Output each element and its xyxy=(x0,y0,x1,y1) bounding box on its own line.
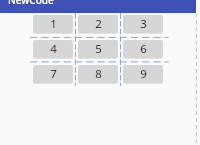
staticText: 8 xyxy=(95,66,102,82)
staticText: NewCode xyxy=(8,0,54,6)
staticText: 7 xyxy=(50,66,57,82)
staticText: 3 xyxy=(140,16,147,32)
staticText: 2 xyxy=(95,16,102,32)
staticText: 6 xyxy=(140,41,147,57)
button[interactable]: Key 9 xyxy=(123,65,163,83)
button[interactable]: Key 1 xyxy=(33,15,73,33)
staticText: 1 xyxy=(50,16,57,32)
button[interactable]: Key 5 xyxy=(78,40,118,58)
button[interactable]: Key 6 xyxy=(123,40,163,58)
button[interactable]: Key 3 xyxy=(123,15,163,33)
staticText: 4 xyxy=(50,41,57,57)
button[interactable]: Key 4 xyxy=(33,40,73,58)
button[interactable]: Key 2 xyxy=(78,15,118,33)
button[interactable]: Key 7 xyxy=(33,65,73,83)
button[interactable]: Key 8 xyxy=(78,65,118,83)
staticText: 5 xyxy=(95,41,102,57)
staticText: 9 xyxy=(140,66,147,82)
